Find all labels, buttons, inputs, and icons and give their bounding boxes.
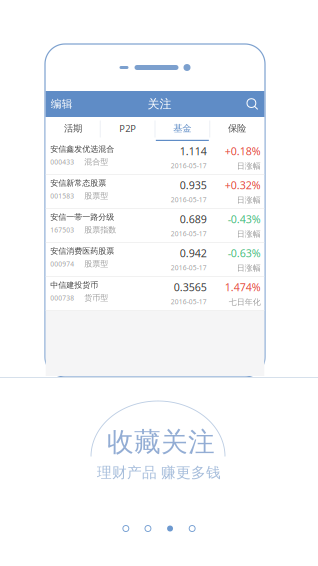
staticText: 日涨幅 bbox=[237, 263, 261, 273]
staticText: 货币型 bbox=[84, 293, 108, 303]
staticText: 基金 bbox=[173, 123, 191, 134]
staticText: 收藏关注 bbox=[107, 426, 215, 458]
staticText: P2P bbox=[119, 122, 136, 135]
button[interactable]: 安信鑫发优选混合 bbox=[46, 141, 264, 175]
staticText: 安信消费医药股票 bbox=[50, 246, 114, 256]
staticText: 167503 bbox=[50, 225, 74, 234]
button[interactable]: Search bbox=[240, 91, 264, 117]
staticText: 2016-05-17 bbox=[171, 229, 207, 238]
staticText: 0.942 bbox=[180, 246, 207, 260]
staticText: +0.32% bbox=[225, 178, 261, 192]
button[interactable]: 安信消费医药股票 bbox=[46, 243, 264, 277]
staticText: 股票型 bbox=[84, 191, 108, 201]
staticText: 2016-05-17 bbox=[171, 195, 207, 204]
staticText: 日涨幅 bbox=[237, 229, 261, 239]
staticText: 安信一带一路分级 bbox=[50, 212, 114, 222]
staticText: 2016-05-17 bbox=[171, 161, 207, 170]
staticText: 日涨幅 bbox=[237, 195, 261, 205]
staticText: 股票指数 bbox=[84, 225, 116, 235]
staticText: 混合型 bbox=[84, 157, 108, 167]
staticText: 中信建投货币 bbox=[50, 280, 98, 290]
staticText: 0.935 bbox=[180, 178, 207, 192]
staticText: 000433 bbox=[50, 157, 74, 166]
button[interactable]: 保险 bbox=[210, 117, 264, 141]
staticText: +0.18% bbox=[225, 144, 261, 158]
staticText: 2016-05-17 bbox=[171, 263, 207, 272]
staticText: 股票型 bbox=[84, 259, 108, 269]
staticText: 0.3565 bbox=[174, 280, 207, 294]
staticText: 000738 bbox=[50, 293, 74, 302]
staticText: 1.474% bbox=[225, 280, 261, 294]
staticText: 编辑 bbox=[51, 97, 73, 110]
staticText: 安信鑫发优选混合 bbox=[50, 144, 114, 154]
staticText: 理财产品 赚更多钱 bbox=[97, 463, 221, 481]
button[interactable]: 基金 bbox=[155, 117, 210, 141]
button[interactable]: 活期 bbox=[46, 117, 100, 141]
staticText: -0.43% bbox=[228, 212, 261, 226]
staticText: 000974 bbox=[50, 259, 74, 268]
staticText: 1.114 bbox=[180, 144, 207, 158]
staticText: 安信新常态股票 bbox=[50, 178, 106, 188]
staticText: 活期 bbox=[64, 123, 82, 134]
staticText: 关注 bbox=[147, 97, 171, 111]
staticText: 日涨幅 bbox=[237, 161, 261, 171]
button[interactable]: P2P bbox=[100, 117, 155, 141]
button[interactable]: 编辑 bbox=[46, 91, 79, 117]
staticText: 七日年化 bbox=[229, 297, 261, 307]
button[interactable]: 安信新常态股票 bbox=[46, 175, 264, 209]
button[interactable]: 安信一带一路分级 bbox=[46, 209, 264, 243]
button[interactable]: 中信建投货币 bbox=[46, 277, 264, 311]
staticText: 2016-05-17 bbox=[171, 297, 207, 306]
staticText: -0.63% bbox=[228, 246, 261, 260]
staticText: 0.689 bbox=[180, 212, 207, 226]
staticText: 保险 bbox=[228, 123, 246, 134]
staticText: 001583 bbox=[50, 191, 74, 200]
